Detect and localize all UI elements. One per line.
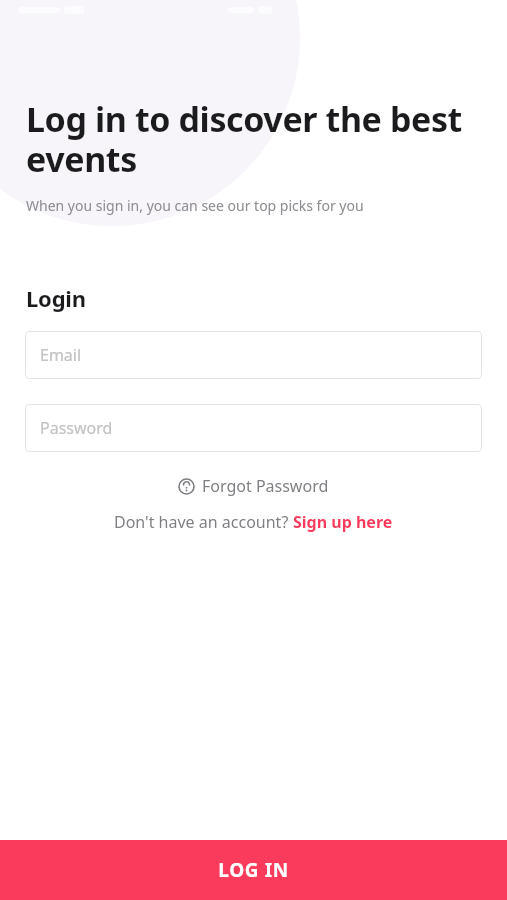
staticText: When you sign in, you can see our top pi… [26, 196, 364, 215]
other: Help [178, 478, 195, 495]
button[interactable]: Password [25, 404, 482, 452]
button[interactable]: LOG IN [0, 840, 507, 900]
staticText: Forgot Password [202, 475, 329, 497]
staticText: Sign up here [293, 511, 393, 533]
staticText: Password [40, 417, 113, 439]
staticText: Don't have an account? [114, 511, 293, 533]
button[interactable]: Help [172, 472, 335, 500]
staticText: LOG IN [218, 857, 289, 883]
button[interactable]: Email [25, 331, 482, 379]
staticText: Email [40, 344, 82, 366]
staticText: Log in to discover the best events [26, 96, 467, 182]
staticText: Login [26, 283, 86, 313]
button[interactable]: Don't have an account? [108, 508, 399, 536]
